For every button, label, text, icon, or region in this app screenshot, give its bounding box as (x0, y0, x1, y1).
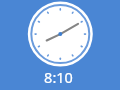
button[interactable]: Analog clock showing 8:10 (0, 0, 120, 90)
staticText: 8:10 (44, 67, 73, 87)
